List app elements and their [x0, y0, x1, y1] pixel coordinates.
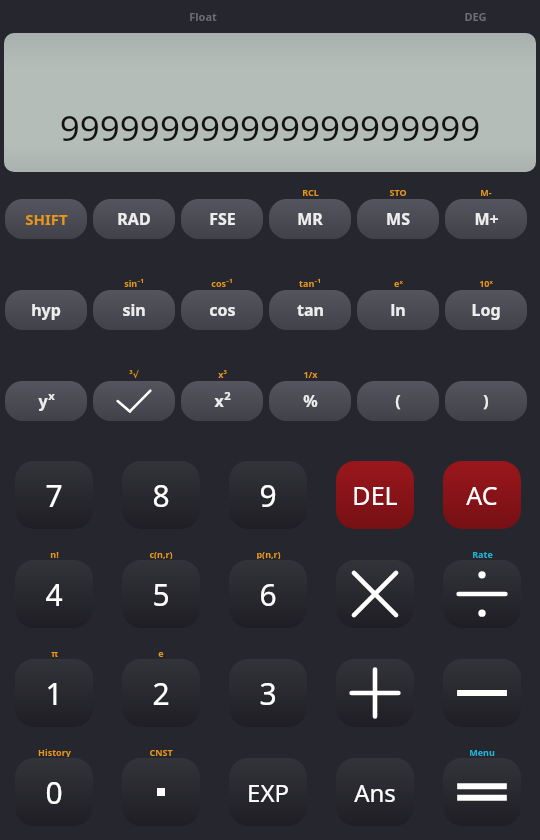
- staticText: MR: [297, 208, 323, 230]
- button[interactable]: tan: [269, 290, 351, 330]
- staticText: 0: [45, 772, 63, 813]
- button[interactable]: Subtract: [443, 659, 521, 727]
- button[interactable]: 3: [229, 659, 307, 727]
- staticText: SHIFT: [25, 209, 68, 229]
- button[interactable]: y: [5, 381, 87, 421]
- staticText: 3: [259, 673, 277, 714]
- staticText: 9: [259, 475, 277, 516]
- staticText: RAD: [117, 208, 151, 230]
- staticText: tan: [297, 299, 324, 321]
- staticText: STO: [389, 186, 407, 197]
- staticText: 6: [259, 574, 277, 615]
- staticText: n!: [50, 548, 59, 559]
- staticText: e: [158, 647, 164, 658]
- button[interactable]: 2: [122, 659, 200, 727]
- staticText: RCL: [302, 186, 319, 197]
- button[interactable]: AC: [443, 461, 521, 529]
- staticText: Menu: [469, 746, 495, 757]
- staticText: Float: [189, 9, 217, 24]
- staticText: x: [48, 388, 55, 403]
- staticText: DEL: [352, 478, 398, 512]
- button[interactable]: (: [357, 381, 439, 421]
- staticText: sin⁻¹: [124, 277, 144, 288]
- button[interactable]: Divide: [443, 560, 521, 628]
- staticText: AC: [466, 478, 498, 512]
- staticText: y: [38, 390, 48, 412]
- staticText: %: [303, 390, 318, 412]
- button[interactable]: Equals: [443, 758, 521, 826]
- button[interactable]: cos: [181, 290, 263, 330]
- button[interactable]: RAD: [93, 199, 175, 239]
- button[interactable]: 0: [15, 758, 93, 826]
- button[interactable]: Float: [153, 0, 253, 33]
- button[interactable]: EXP: [229, 758, 307, 826]
- button[interactable]: 1: [15, 659, 93, 727]
- staticText: DEG: [464, 9, 487, 24]
- staticText: cos⁻¹: [211, 277, 233, 288]
- staticText: x: [214, 390, 224, 412]
- button[interactable]: Decimal point: [122, 758, 200, 826]
- staticText: ³√: [129, 368, 139, 379]
- staticText: 1: [45, 673, 63, 714]
- staticText: (: [395, 390, 401, 412]
- button[interactable]: 5: [122, 560, 200, 628]
- button[interactable]: sin: [93, 290, 175, 330]
- staticText: cos: [209, 299, 236, 321]
- button[interactable]: 4: [15, 560, 93, 628]
- staticText: sin: [122, 299, 146, 321]
- button[interactable]: MS: [357, 199, 439, 239]
- staticText: M+: [474, 208, 499, 230]
- button[interactable]: Log: [445, 290, 527, 330]
- button[interactable]: Ans: [336, 758, 414, 826]
- staticText: M-: [480, 186, 492, 197]
- button[interactable]: 9: [229, 461, 307, 529]
- staticText: 4: [45, 574, 63, 615]
- staticText: Ans: [354, 776, 396, 809]
- button[interactable]: DEG: [430, 0, 520, 33]
- staticText: ln: [390, 299, 406, 321]
- staticText: x³: [218, 368, 227, 379]
- staticText: 2: [152, 673, 170, 714]
- staticText: 7: [45, 475, 63, 516]
- staticText: EXP: [247, 776, 289, 809]
- button[interactable]: 999999999999999999999: [4, 33, 536, 172]
- staticText: MS: [386, 208, 410, 230]
- button[interactable]: DEL: [336, 461, 414, 529]
- button[interactable]: Add: [336, 659, 414, 727]
- button[interactable]: %: [269, 381, 351, 421]
- staticText: Log: [471, 299, 501, 321]
- staticText: FSE: [209, 208, 236, 230]
- button[interactable]: SHIFT: [5, 199, 87, 239]
- staticText: ): [483, 390, 489, 412]
- staticText: p(n,r): [256, 548, 281, 559]
- button[interactable]: ln: [357, 290, 439, 330]
- staticText: π: [51, 647, 58, 658]
- staticText: 2: [224, 388, 231, 403]
- staticText: 1/x: [303, 368, 318, 379]
- staticText: 999999999999999999999: [4, 104, 536, 152]
- button[interactable]: MR: [269, 199, 351, 239]
- staticText: hyp: [31, 299, 61, 321]
- staticText: eˣ: [394, 277, 403, 288]
- button[interactable]: [93, 381, 175, 421]
- button[interactable]: hyp: [5, 290, 87, 330]
- staticText: 5: [152, 574, 170, 615]
- button[interactable]: Multiply: [336, 560, 414, 628]
- staticText: History: [38, 746, 71, 757]
- staticText: tan⁻¹: [299, 277, 321, 288]
- staticText: CNST: [149, 746, 173, 757]
- staticText: c(n,r): [149, 548, 173, 559]
- button[interactable]: M+: [445, 199, 527, 239]
- staticText: 8: [152, 475, 170, 516]
- button[interactable]: ): [445, 381, 527, 421]
- button[interactable]: FSE: [181, 199, 263, 239]
- button[interactable]: x: [181, 381, 263, 421]
- staticText: Rate: [472, 548, 493, 559]
- staticText: 10ˣ: [479, 277, 493, 288]
- button[interactable]: 7: [15, 461, 93, 529]
- button[interactable]: 6: [229, 560, 307, 628]
- button[interactable]: 8: [122, 461, 200, 529]
